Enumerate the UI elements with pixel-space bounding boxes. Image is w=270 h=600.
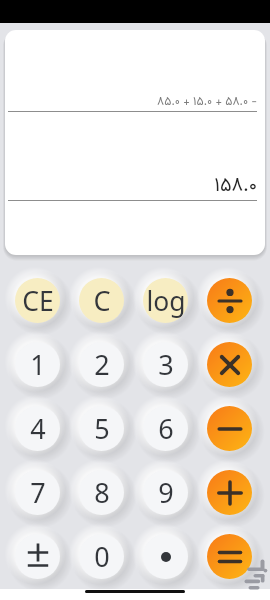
button[interactable]: Subtract xyxy=(207,406,252,451)
button[interactable]: CE xyxy=(15,278,60,323)
staticText: 2 xyxy=(94,346,110,383)
button[interactable]: 9 xyxy=(143,470,188,515)
staticText: 3 xyxy=(158,346,174,383)
button[interactable]: 4 xyxy=(15,406,60,451)
button[interactable]: Equals xyxy=(207,534,252,579)
button[interactable]: log xyxy=(143,278,188,323)
button[interactable]: Add xyxy=(207,470,252,515)
staticText: 6 xyxy=(158,410,174,447)
staticText: ۱۵۸.۰ xyxy=(5,171,257,202)
staticText: 0 xyxy=(94,538,110,575)
button[interactable]: Decimal point xyxy=(143,534,188,579)
button[interactable]: Multiply xyxy=(207,342,252,387)
button[interactable]: 7 xyxy=(15,470,60,515)
button[interactable]: 2 xyxy=(79,342,124,387)
staticText: log xyxy=(146,283,186,319)
button[interactable]: 0 xyxy=(79,534,124,579)
button[interactable]: Divide xyxy=(207,278,252,323)
button[interactable]: 8 xyxy=(79,470,124,515)
staticText: 9 xyxy=(158,474,174,511)
staticText: 7 xyxy=(30,474,46,511)
staticText: CE xyxy=(22,283,54,319)
staticText: ۸۵.۰ + ۱۵.۰ + ۵۸.۰ − xyxy=(5,92,257,111)
button[interactable]: Plus minus xyxy=(15,534,60,579)
button[interactable]: 5 xyxy=(79,406,124,451)
button[interactable]: 1 xyxy=(15,342,60,387)
button[interactable]: C xyxy=(79,278,124,323)
staticText: 8 xyxy=(94,474,110,511)
staticText: 5 xyxy=(94,410,110,447)
staticText: C xyxy=(93,282,111,319)
button[interactable]: 6 xyxy=(143,406,188,451)
staticText: 1 xyxy=(30,346,46,383)
button[interactable]: 3 xyxy=(143,342,188,387)
staticText: 4 xyxy=(30,410,46,447)
